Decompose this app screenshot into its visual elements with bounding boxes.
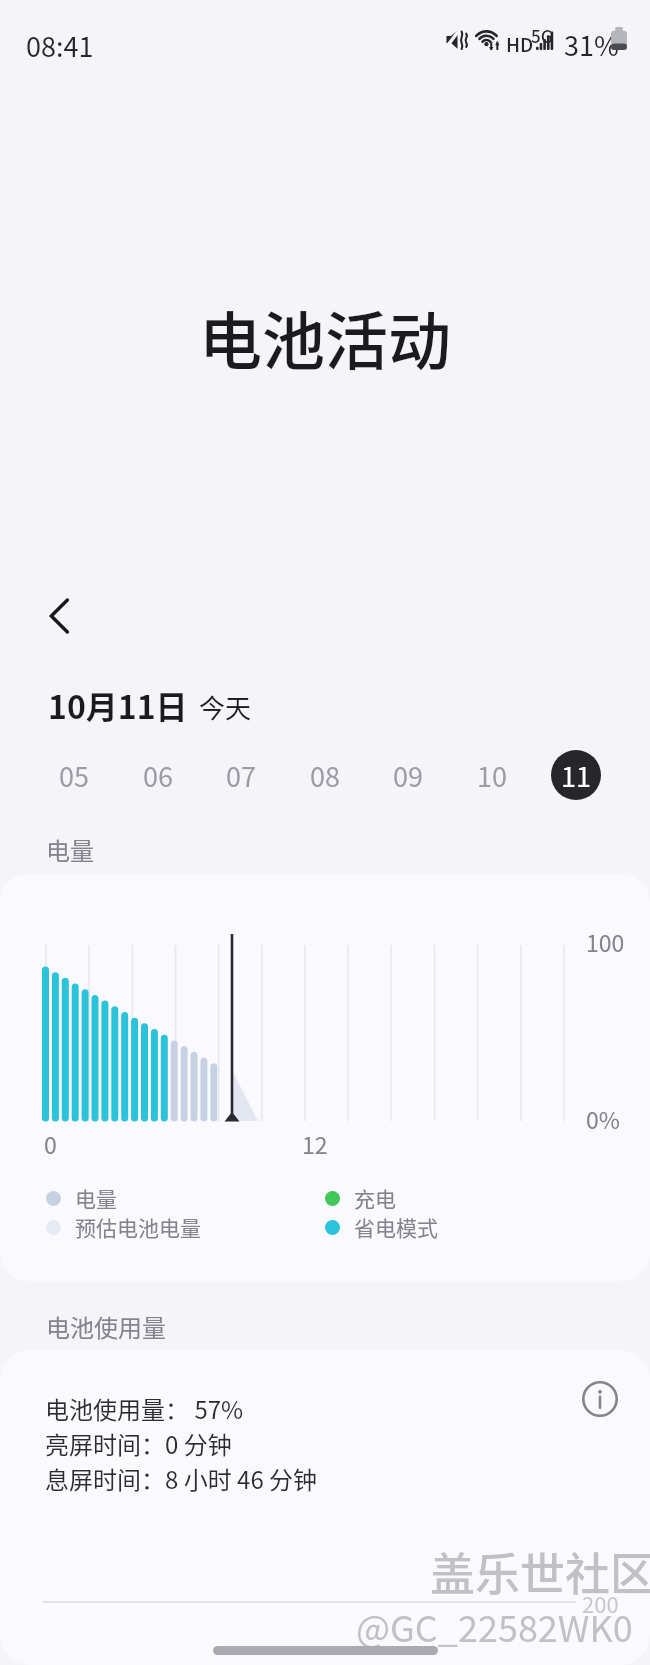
staticText: 31%	[564, 25, 619, 64]
staticText: 预估电池电量	[75, 1212, 201, 1242]
staticText: 电池使用量	[46, 1309, 166, 1344]
staticText: 0	[44, 1127, 57, 1160]
button[interactable]: Back	[31, 588, 87, 644]
staticText: 电量	[75, 1183, 117, 1213]
staticText: 11	[561, 756, 591, 795]
staticText: 05	[59, 756, 89, 795]
staticText: 5G	[531, 23, 553, 48]
staticText: 200	[582, 1587, 619, 1619]
button[interactable]: Info	[577, 1376, 623, 1422]
staticText: 07	[226, 756, 256, 795]
button[interactable]: 08	[291, 746, 359, 804]
button[interactable]: 11	[542, 746, 610, 804]
staticText: 10月11日	[48, 682, 188, 728]
staticText: 省电模式	[354, 1212, 438, 1242]
staticText: 今天	[199, 688, 252, 726]
button[interactable]: 07	[207, 746, 275, 804]
staticText: 电量	[46, 832, 94, 867]
staticText: 盖乐世社区	[430, 1539, 650, 1604]
button[interactable]: 06	[124, 746, 192, 804]
button[interactable]: 09	[374, 746, 442, 804]
button[interactable]: 05	[40, 746, 108, 804]
button[interactable]: 10	[458, 746, 526, 804]
staticText: 亮屏时间：0 分钟	[45, 1426, 232, 1461]
staticText: 10	[477, 756, 507, 795]
staticText: 息屏时间：8 小时 46 分钟	[45, 1461, 318, 1496]
staticText: 电池活动	[199, 291, 451, 381]
staticText: 充电	[354, 1183, 396, 1213]
staticText: 电池使用量： 57%	[45, 1391, 244, 1426]
staticText: @GC_22582WK0	[356, 1600, 633, 1652]
staticText: 06	[143, 756, 173, 795]
staticText: 08	[310, 756, 340, 795]
staticText: 0%	[586, 1102, 620, 1135]
staticText: HD	[506, 30, 534, 58]
staticText: 100	[586, 925, 625, 958]
staticText: 08:41	[26, 26, 94, 65]
staticText: 09	[393, 756, 423, 795]
staticText: 12	[302, 1127, 328, 1160]
